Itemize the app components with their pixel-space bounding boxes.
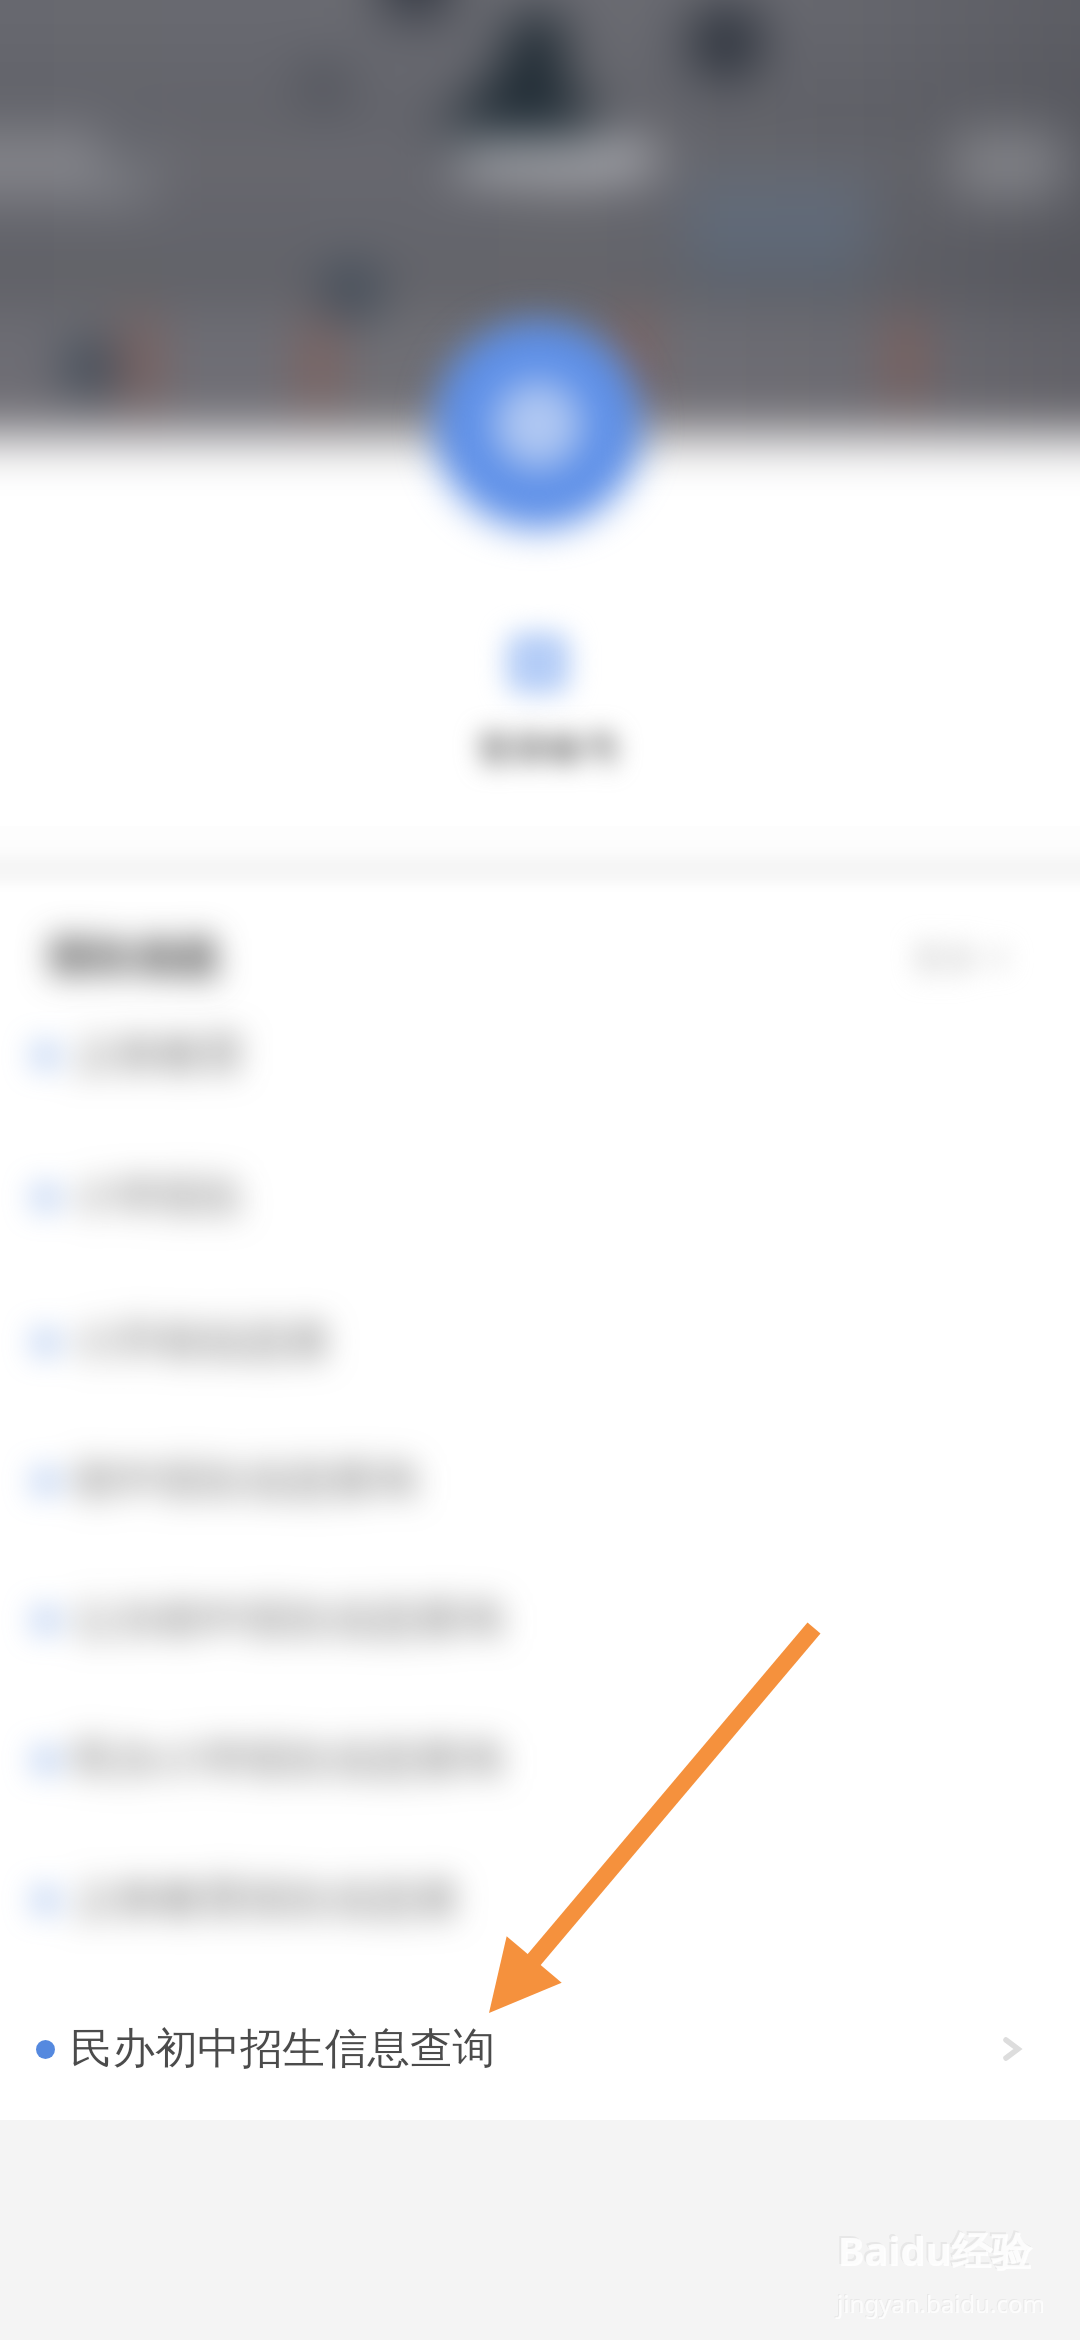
staticText: 小学招生 [73,1170,245,1224]
staticText: jingyan.baidu.com [836,2286,1044,2319]
staticText: 登录账号 [476,727,620,772]
staticText: 初中招生信息查询 [73,1454,417,1508]
staticText: Baidu经验 [836,2221,1030,2276]
staticText: 义务教育招生信息查 [73,1873,460,1927]
staticText: Baidu经验 [838,2223,1032,2278]
staticText: 小升初信息查 [73,1315,331,1369]
button[interactable]: 民办初中招生信息查询 [0,1989,1080,2109]
staticText: 民办小学招生信息查询 [73,1733,503,1787]
staticText: 义务教育 [73,1028,245,1082]
staticText: 公办初中招生信息查询 [73,1593,503,1647]
staticText: 民办初中招生信息查询 [70,2022,495,2076]
staticText: 更多 [912,937,980,980]
staticText: jingyan.baidu.com [837,2287,1045,2320]
staticText: 招生信息 [48,931,220,985]
